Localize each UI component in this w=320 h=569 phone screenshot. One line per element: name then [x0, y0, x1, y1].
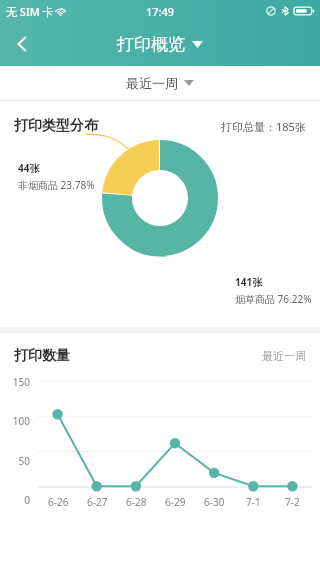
staticText: 17:49 [146, 4, 175, 19]
staticText: 烟草商品 76.22% [235, 292, 312, 306]
staticText: 100 [0, 414, 30, 428]
staticText: 打印数量 [14, 347, 70, 365]
staticText: 141张 [235, 275, 263, 289]
staticText: 打印概览 [117, 34, 185, 55]
staticText: 无 SIM 卡 [6, 4, 54, 19]
staticText: 打印类型分布 [14, 117, 98, 135]
staticText: 50 [0, 454, 30, 468]
staticText: 44张 [18, 161, 40, 175]
staticText: 6-28 [126, 495, 147, 509]
staticText: 6-29 [165, 495, 186, 509]
button[interactable]: Back [0, 22, 44, 66]
staticText: 7-2 [285, 495, 300, 509]
staticText: 最近一周 [126, 75, 178, 91]
staticText: 6-27 [87, 495, 108, 509]
button[interactable]: 最近一周 [126, 75, 194, 91]
staticText: 0 [0, 493, 30, 507]
staticText: 最近一周 [262, 349, 306, 363]
staticText: 7-1 [246, 495, 261, 509]
staticText: 非烟商品 23.78% [18, 178, 95, 192]
button[interactable]: 打印概览 [117, 34, 203, 55]
staticText: 150 [0, 375, 30, 389]
staticText: 6-30 [204, 495, 225, 509]
staticText: 打印总量：185张 [221, 119, 306, 134]
staticText: 6-26 [48, 495, 69, 509]
